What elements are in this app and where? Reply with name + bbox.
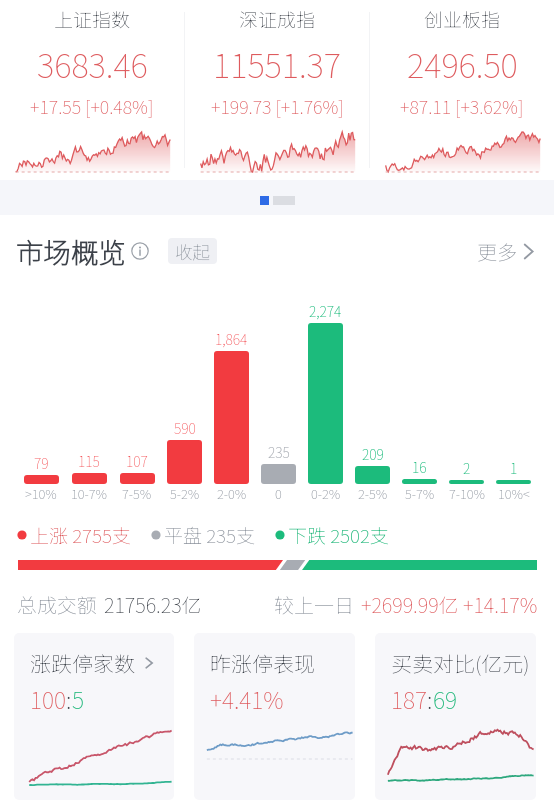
staticText: 100 <box>30 682 66 715</box>
staticText: 7-5% <box>122 484 152 503</box>
staticText: 1,864 <box>215 329 248 349</box>
button[interactable]: 创业板指 <box>370 0 554 180</box>
staticText: +17.55 [+0.48%] <box>30 93 154 119</box>
staticText: 深证成指 <box>239 5 316 33</box>
staticText: 0-2% <box>311 484 341 503</box>
button[interactable]: Page indicator <box>260 196 295 205</box>
staticText: 209 <box>362 444 384 464</box>
staticText: 5-7% <box>405 484 435 503</box>
staticText: 更多 <box>477 237 517 266</box>
staticText: 创业板指 <box>424 5 501 33</box>
staticText: >10% <box>25 484 57 503</box>
staticText: +4.41% <box>210 682 284 715</box>
staticText: 昨涨停表现 <box>210 648 315 678</box>
staticText: 收起 <box>175 239 210 264</box>
staticText: 市场概览 <box>16 231 126 271</box>
staticText: 5-2% <box>170 484 200 503</box>
staticText: 3683.46 <box>37 40 148 88</box>
staticText: +199.73 [+1.76%] <box>211 93 344 119</box>
staticText: 7-10% <box>449 484 485 503</box>
staticText: 涨跌停家数 <box>30 648 135 678</box>
staticText: 16 <box>412 457 427 477</box>
staticText: 2-5% <box>358 484 388 503</box>
staticText: +2699.99亿 +14.17% <box>361 590 538 619</box>
staticText: 上涨 2755支 <box>30 521 131 549</box>
staticText: 11551.37 <box>213 40 341 88</box>
staticText: 235 <box>268 442 290 462</box>
staticText: 1 <box>510 458 518 478</box>
button[interactable]: 上证指数 <box>0 0 184 180</box>
staticText: 下跌 2502支 <box>288 521 389 549</box>
staticText: 10%< <box>498 484 530 503</box>
button[interactable]: 更多 <box>477 237 538 266</box>
staticText: 总成交额 <box>17 590 97 619</box>
button[interactable]: 昨涨停表现 <box>194 633 355 800</box>
button[interactable]: 涨跌停家数 <box>14 633 174 800</box>
staticText: 107 <box>126 451 148 471</box>
staticText: 10-7% <box>71 484 107 503</box>
staticText: 79 <box>34 453 49 473</box>
staticText: +87.11 [+3.62%] <box>400 93 524 119</box>
button[interactable]: 收起 <box>168 238 217 264</box>
staticText: 较上一日 <box>274 590 354 619</box>
staticText: 115 <box>78 451 100 471</box>
staticText: : <box>427 682 433 715</box>
button[interactable]: Info <box>131 242 149 260</box>
staticText: 买卖对比(亿元) <box>391 648 530 678</box>
staticText: 69 <box>433 682 457 715</box>
staticText: 21756.23亿 <box>104 590 202 619</box>
staticText: 平盘 235支 <box>164 521 255 549</box>
staticText: 590 <box>174 418 196 438</box>
staticText: 上证指数 <box>54 5 131 33</box>
staticText: 2-0% <box>217 484 247 503</box>
staticText: 5 <box>72 682 84 715</box>
button[interactable]: 深证成指 <box>185 0 369 180</box>
staticText: 2 <box>463 458 471 478</box>
staticText: : <box>66 682 72 715</box>
staticText: 187 <box>391 682 427 715</box>
staticText: 0 <box>275 484 282 503</box>
staticText: 2,274 <box>309 301 342 321</box>
button[interactable]: 买卖对比(亿元) <box>375 633 536 800</box>
staticText: 2496.50 <box>407 40 518 88</box>
